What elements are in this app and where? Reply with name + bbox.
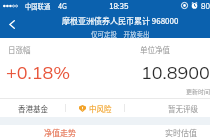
staticText: 仅可定投 开放卖出 xyxy=(91,29,150,38)
staticText: 更新时间 05-21 xyxy=(186,87,210,96)
staticText: 实时估值 xyxy=(165,127,197,139)
staticText: 摩根亚洲债券人民币累计 968000 xyxy=(62,15,179,27)
staticText: 80 xyxy=(201,2,210,11)
button[interactable]: 净值走势 xyxy=(0,125,120,140)
button[interactable]: 香港基金 xyxy=(0,99,65,117)
button[interactable]: 实时估值 xyxy=(120,125,210,140)
staticText: 10.8900 xyxy=(141,61,210,84)
staticText: +0.18% xyxy=(6,61,71,84)
staticText: 18:35 xyxy=(109,2,129,11)
button[interactable]: 中风险 xyxy=(66,99,124,117)
button[interactable]: Back xyxy=(1,13,23,35)
staticText: 单位净值 xyxy=(140,44,170,55)
staticText: 中国联通 xyxy=(25,2,51,11)
staticText: 暂无评级 xyxy=(168,103,198,114)
staticText: 4G xyxy=(58,2,67,10)
button[interactable]: 暂无评级 xyxy=(125,99,210,117)
staticText: 香港基金 xyxy=(18,103,48,114)
staticText: 日涨幅 xyxy=(8,44,31,55)
staticText: 净值走势 xyxy=(44,127,76,139)
staticText: 中风险 xyxy=(89,103,112,114)
